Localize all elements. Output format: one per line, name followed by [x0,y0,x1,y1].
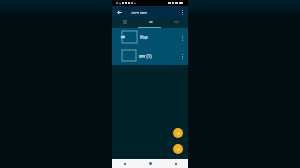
staticText: ग्राम (1) [139,53,152,59]
button[interactable]: ग्राम (1) [112,47,188,65]
button[interactable]: Back [114,7,125,18]
staticText: अपना खाता [131,10,147,15]
button[interactable]: Add entry [173,128,183,138]
button[interactable]: शिक्षा [112,28,188,47]
button[interactable]: Watch [138,18,163,28]
button[interactable]: More options [178,8,186,16]
staticText: शिक्षा [140,35,148,40]
button[interactable]: Notes [112,18,138,28]
button[interactable]: Back [163,159,188,168]
button[interactable]: New recording [173,144,183,154]
button[interactable]: Recent apps [112,159,138,168]
button[interactable]: Item options [178,52,186,60]
button[interactable]: Audio [163,18,188,28]
button[interactable]: Home [138,159,163,168]
button[interactable]: Item options [178,34,186,42]
